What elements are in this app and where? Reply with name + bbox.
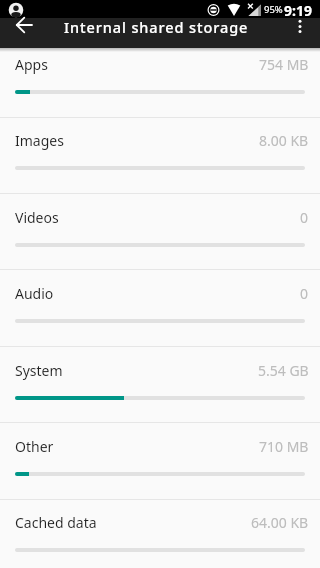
staticText: 8.00 KB (259, 131, 309, 150)
button[interactable]: System (0, 352, 320, 428)
staticText: Other (15, 437, 54, 456)
staticText: 9:19 (284, 1, 312, 19)
staticText: 0 (300, 208, 309, 227)
staticText: Audio (15, 284, 54, 303)
button[interactable]: Images (0, 122, 320, 198)
button[interactable]: Videos (0, 199, 320, 275)
button[interactable]: Other (0, 428, 320, 504)
button[interactable] (0, 18, 48, 48)
button[interactable]: Audio (0, 275, 320, 351)
staticText: 0 (300, 284, 309, 303)
staticText: 95% (264, 3, 283, 16)
staticText: System (15, 361, 63, 380)
staticText: 64.00 KB (251, 513, 309, 532)
staticText: 754 MB (259, 55, 309, 74)
staticText: Apps (15, 55, 48, 74)
staticText: Cached data (15, 513, 97, 532)
staticText: Videos (15, 208, 59, 227)
button[interactable]: Cached data (0, 504, 320, 568)
staticText: Images (15, 131, 64, 150)
button[interactable]: Apps (0, 46, 320, 122)
staticText: 710 MB (259, 437, 309, 456)
staticText: 5.54 GB (258, 361, 309, 380)
button[interactable] (284, 18, 320, 48)
staticText: Internal shared storage (64, 17, 249, 37)
